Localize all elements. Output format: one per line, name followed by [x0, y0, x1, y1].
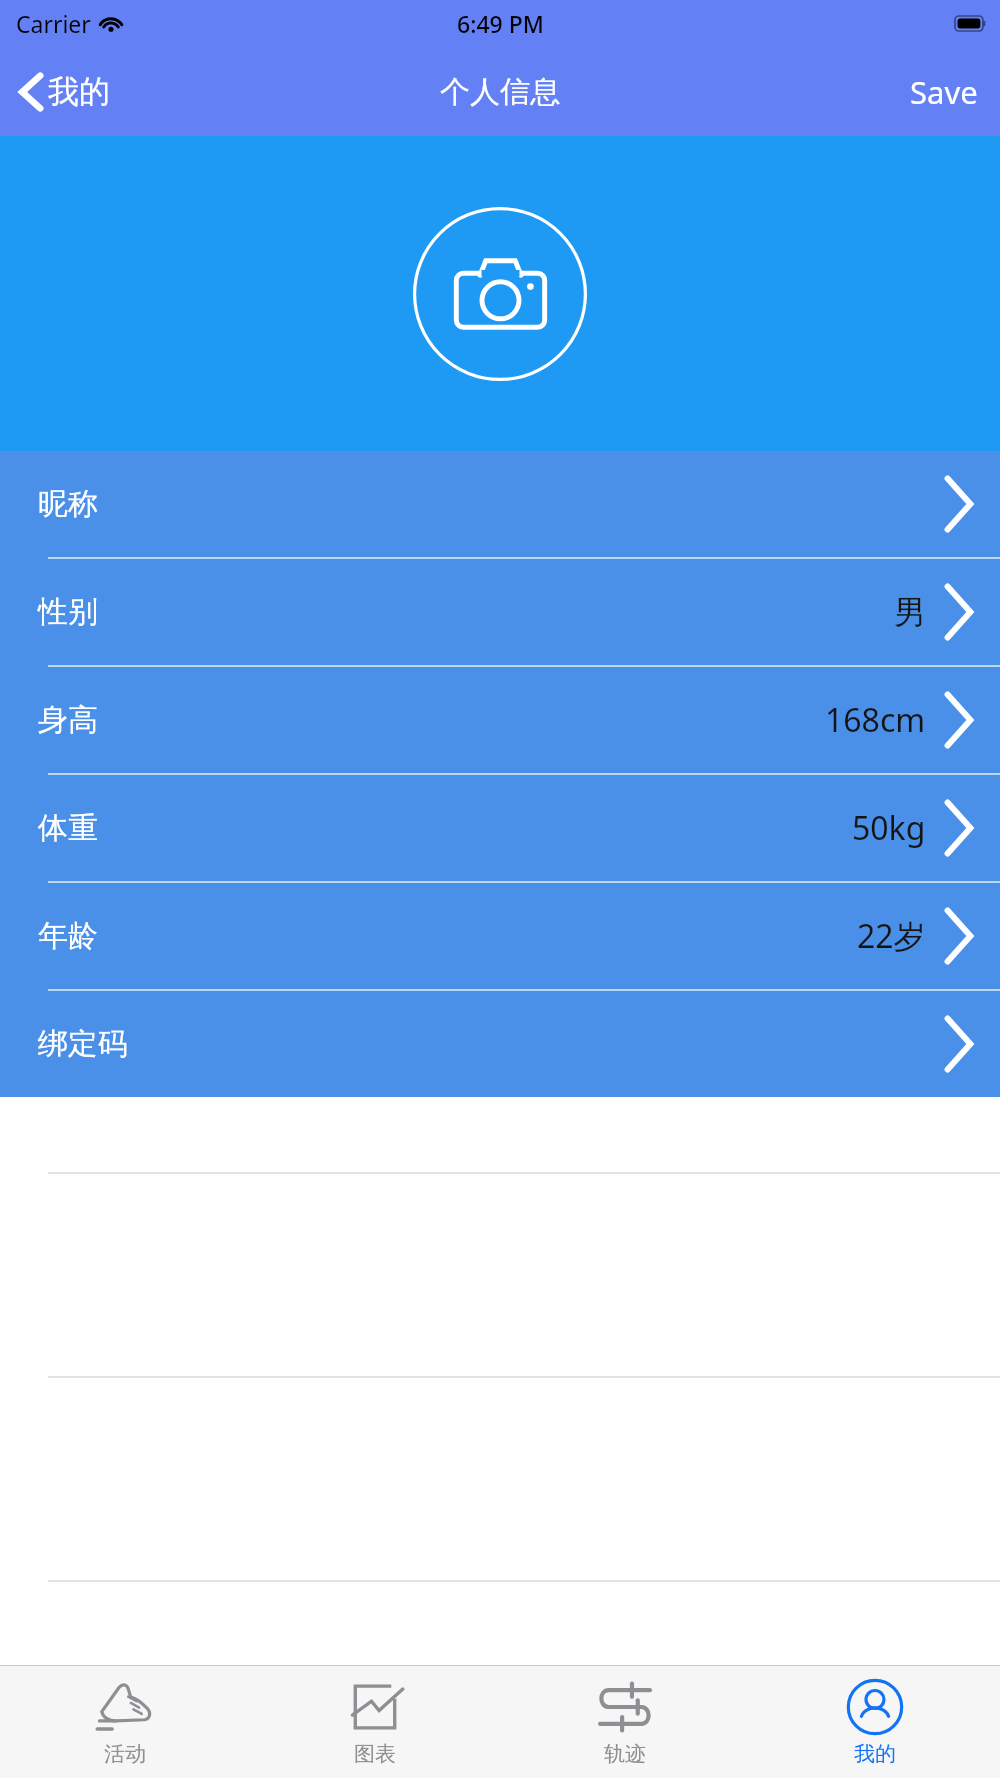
- staticText: 6:49 PM: [457, 8, 544, 39]
- button[interactable]: 身高: [0, 667, 1000, 773]
- button[interactable]: 绑定码: [0, 991, 1000, 1097]
- button[interactable]: 性别: [0, 559, 1000, 665]
- button[interactable]: 轨迹: [500, 1666, 750, 1778]
- staticText: 22岁: [857, 914, 926, 958]
- staticText: 年龄: [38, 917, 98, 955]
- button[interactable]: 年龄: [0, 883, 1000, 989]
- staticText: 男: [894, 592, 926, 632]
- staticText: Save: [910, 71, 978, 113]
- staticText: 50kg: [852, 806, 926, 850]
- staticText: 我的: [48, 72, 110, 111]
- staticText: 昵称: [38, 485, 98, 523]
- button[interactable]: 活动: [0, 1666, 250, 1778]
- button[interactable]: Save: [888, 61, 1000, 123]
- button[interactable]: 体重: [0, 775, 1000, 881]
- staticText: 身高: [38, 701, 98, 739]
- staticText: 性别: [38, 593, 98, 631]
- staticText: 活动: [104, 1741, 146, 1767]
- staticText: 图表: [354, 1741, 396, 1767]
- staticText: 168cm: [825, 698, 926, 742]
- button[interactable]: 我的: [0, 64, 126, 119]
- staticText: 个人信息: [440, 73, 560, 111]
- button[interactable]: Change profile photo: [413, 207, 587, 381]
- staticText: 轨迹: [604, 1741, 646, 1767]
- staticText: 体重: [38, 809, 98, 847]
- staticText: 绑定码: [38, 1025, 128, 1063]
- staticText: Carrier: [16, 8, 91, 39]
- button[interactable]: 图表: [250, 1666, 500, 1778]
- staticText: 我的: [854, 1741, 896, 1767]
- button[interactable]: 昵称: [0, 451, 1000, 557]
- button[interactable]: 我的: [750, 1666, 1000, 1778]
